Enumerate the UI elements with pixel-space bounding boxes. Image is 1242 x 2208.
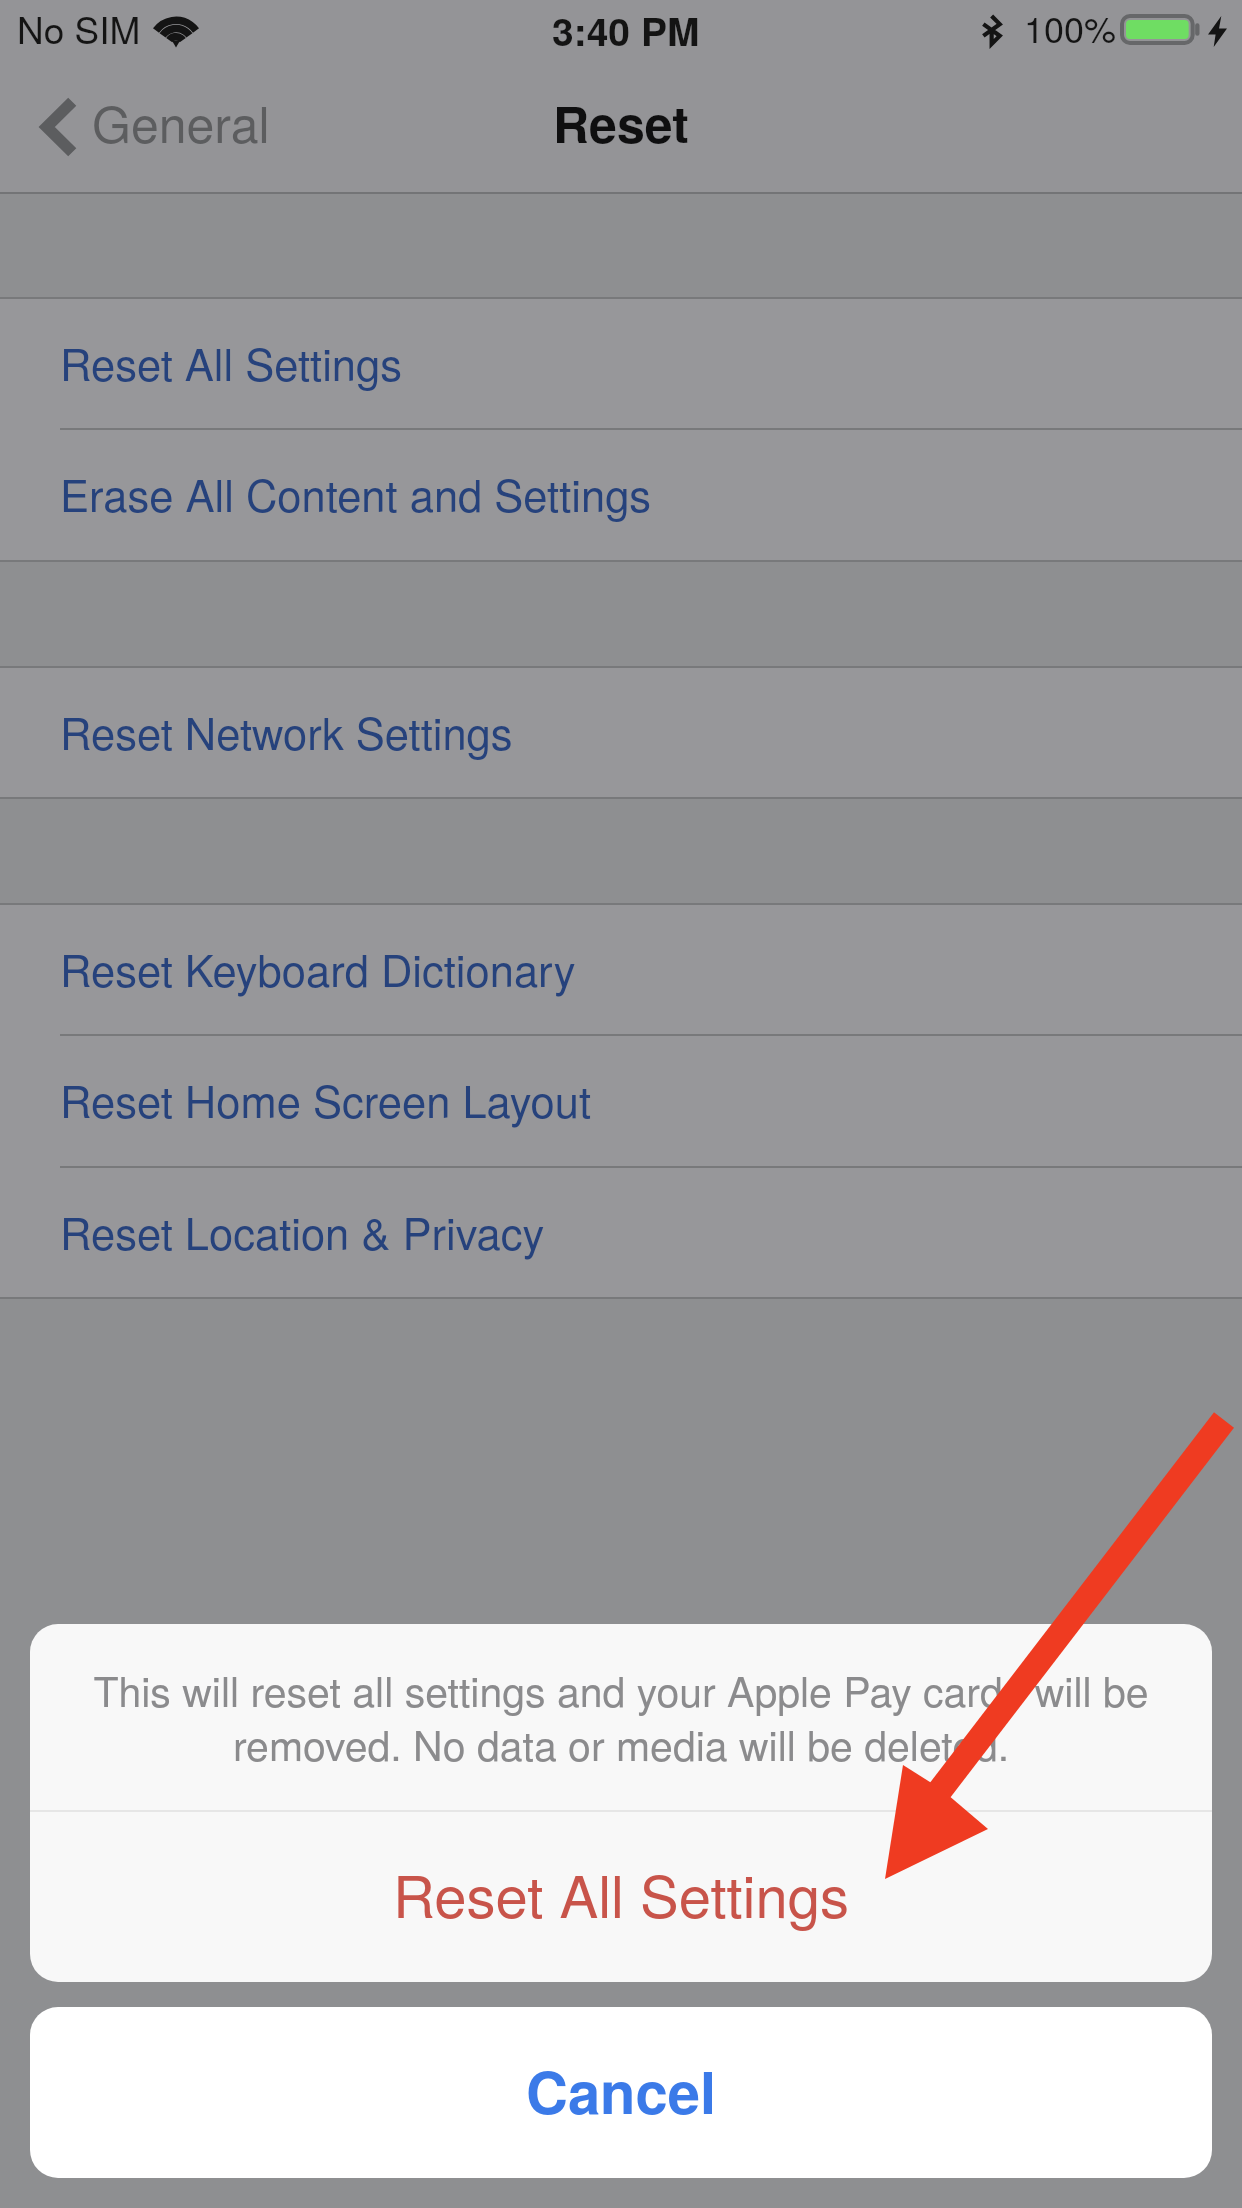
staticText: Reset Home Screen Layout [60, 1068, 592, 1130]
button[interactable]: Reset All Settings [30, 1812, 1212, 1982]
button[interactable]: Reset All Settings [0, 299, 1242, 430]
staticText: Reset Network Settings [60, 700, 513, 762]
button[interactable]: Reset Home Screen Layout [0, 1036, 1242, 1168]
staticText: Cancel [526, 2049, 717, 2132]
staticText: This will reset all settings and your Ap… [85, 1660, 1157, 1773]
button[interactable]: Reset Keyboard Dictionary [0, 905, 1242, 1036]
staticText: Reset Keyboard Dictionary [60, 937, 576, 999]
staticText: General [92, 86, 270, 158]
button[interactable]: Back to General [20, 62, 290, 194]
button[interactable]: Reset Location & Privacy [0, 1168, 1242, 1299]
staticText: 3:40 PM [552, 2, 700, 58]
staticText: Reset Location & Privacy [60, 1200, 545, 1262]
staticText: Reset [553, 87, 689, 159]
staticText: No SIM [17, 2, 141, 55]
button[interactable]: Erase All Content and Settings [0, 430, 1242, 562]
button[interactable]: Cancel [30, 2007, 1212, 2178]
staticText: 100% [1024, 2, 1117, 54]
staticText: Reset All Settings [60, 331, 402, 393]
button[interactable]: Reset Network Settings [0, 668, 1242, 799]
staticText: Erase All Content and Settings [60, 462, 652, 524]
staticText: Reset All Settings [393, 1851, 849, 1934]
